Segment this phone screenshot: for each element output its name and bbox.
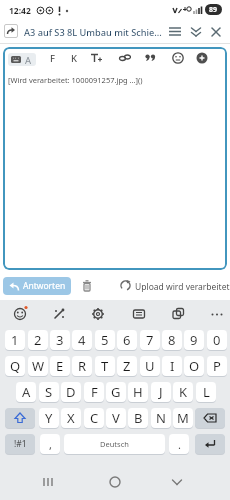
button[interactable] <box>195 434 225 454</box>
button[interactable]: 1 <box>5 330 25 350</box>
staticText: G <box>111 383 121 401</box>
button[interactable] <box>89 51 103 65</box>
button[interactable]: 6 <box>117 330 137 350</box>
button[interactable]: R <box>72 356 92 376</box>
button[interactable]: P <box>207 356 227 376</box>
button[interactable] <box>4 24 18 38</box>
button[interactable] <box>91 307 105 321</box>
staticText: 9 <box>190 331 198 349</box>
staticText: E <box>56 357 64 375</box>
button[interactable]: . <box>169 434 189 454</box>
button[interactable] <box>171 51 185 65</box>
staticText: Y <box>45 409 53 427</box>
staticText: 7 <box>146 331 154 349</box>
button[interactable]: 8 <box>162 330 182 350</box>
button[interactable]: U <box>140 356 160 376</box>
staticText: X <box>67 409 75 427</box>
button[interactable]: 2 <box>28 330 48 350</box>
button[interactable]: K <box>173 382 193 402</box>
button[interactable]: 9 <box>184 330 204 350</box>
button[interactable] <box>195 408 225 428</box>
button[interactable] <box>210 307 224 321</box>
button[interactable]: M <box>173 408 193 428</box>
button[interactable] <box>108 476 122 488</box>
staticText: Q <box>10 357 21 375</box>
staticText: [Wird verarbeitet: 1000091257.jpg ...]() <box>8 75 143 85</box>
button[interactable] <box>42 476 56 488</box>
button[interactable]: H <box>128 382 148 402</box>
staticText: D <box>66 383 76 401</box>
staticText: P <box>213 357 221 375</box>
staticText: F <box>91 383 98 401</box>
button[interactable]: 5 <box>95 330 115 350</box>
button[interactable]: 0 <box>207 330 227 350</box>
button[interactable]: Antworten <box>3 277 71 295</box>
button[interactable]: S <box>39 382 59 402</box>
button[interactable]: O <box>184 356 204 376</box>
staticText: C <box>90 409 99 427</box>
button[interactable]: F <box>84 382 104 402</box>
staticText: 1 <box>11 331 19 349</box>
button[interactable] <box>5 408 35 428</box>
button[interactable]: A <box>16 382 36 402</box>
button[interactable]: A <box>8 53 36 66</box>
button[interactable] <box>64 434 165 454</box>
button[interactable]: J <box>151 382 171 402</box>
button[interactable]: Z <box>117 356 137 376</box>
staticText: I <box>170 357 175 375</box>
button[interactable]: E <box>50 356 70 376</box>
button[interactable]: V <box>106 408 126 428</box>
staticText: 8 <box>168 331 176 349</box>
button[interactable] <box>132 307 146 321</box>
button[interactable]: X <box>61 408 81 428</box>
button[interactable]: , <box>40 434 60 454</box>
button[interactable]: 4 <box>72 330 92 350</box>
button[interactable]: C <box>84 408 104 428</box>
button[interactable]: B <box>128 408 148 428</box>
button[interactable]: K <box>71 52 78 65</box>
button[interactable] <box>13 307 27 321</box>
button[interactable]: F <box>50 52 56 65</box>
button[interactable] <box>144 51 158 65</box>
button[interactable] <box>118 51 132 65</box>
staticText: 5 <box>101 331 109 349</box>
staticText: 12:42 <box>9 5 31 17</box>
staticText: N <box>156 409 166 427</box>
staticText: . <box>178 437 181 452</box>
staticText: 89 <box>209 5 218 15</box>
button[interactable] <box>188 24 204 40</box>
button[interactable]: D <box>61 382 81 402</box>
button[interactable] <box>167 24 183 40</box>
staticText: Z <box>123 357 131 375</box>
button[interactable]: T <box>95 356 115 376</box>
staticText: A <box>25 54 32 66</box>
button[interactable] <box>195 51 209 65</box>
staticText: R <box>78 357 87 375</box>
button[interactable]: Q <box>5 356 25 376</box>
staticText: B <box>134 409 143 427</box>
staticText: , <box>49 437 52 452</box>
button[interactable]: !#1 <box>5 434 35 454</box>
staticText: M <box>177 409 189 427</box>
staticText: O <box>189 357 200 375</box>
button[interactable] <box>208 24 224 40</box>
button[interactable]: N <box>151 408 171 428</box>
staticText: A <box>22 383 31 401</box>
button[interactable]: G <box>106 382 126 402</box>
staticText: H <box>133 383 143 401</box>
staticText: V <box>112 409 120 427</box>
button[interactable] <box>171 307 185 321</box>
staticText: A3 auf S3 8L Umbau mit Schie... <box>24 26 170 39</box>
button[interactable] <box>52 307 66 321</box>
button[interactable] <box>80 279 94 293</box>
button[interactable]: I <box>162 356 182 376</box>
button[interactable]: 7 <box>140 330 160 350</box>
button[interactable]: 3 <box>50 330 70 350</box>
staticText: W <box>32 357 45 375</box>
button[interactable]: W <box>28 356 48 376</box>
button[interactable]: Y <box>39 408 59 428</box>
button[interactable] <box>170 476 184 488</box>
staticText: Antworten <box>23 280 66 292</box>
staticText: U <box>145 357 155 375</box>
button[interactable]: L <box>196 382 216 402</box>
